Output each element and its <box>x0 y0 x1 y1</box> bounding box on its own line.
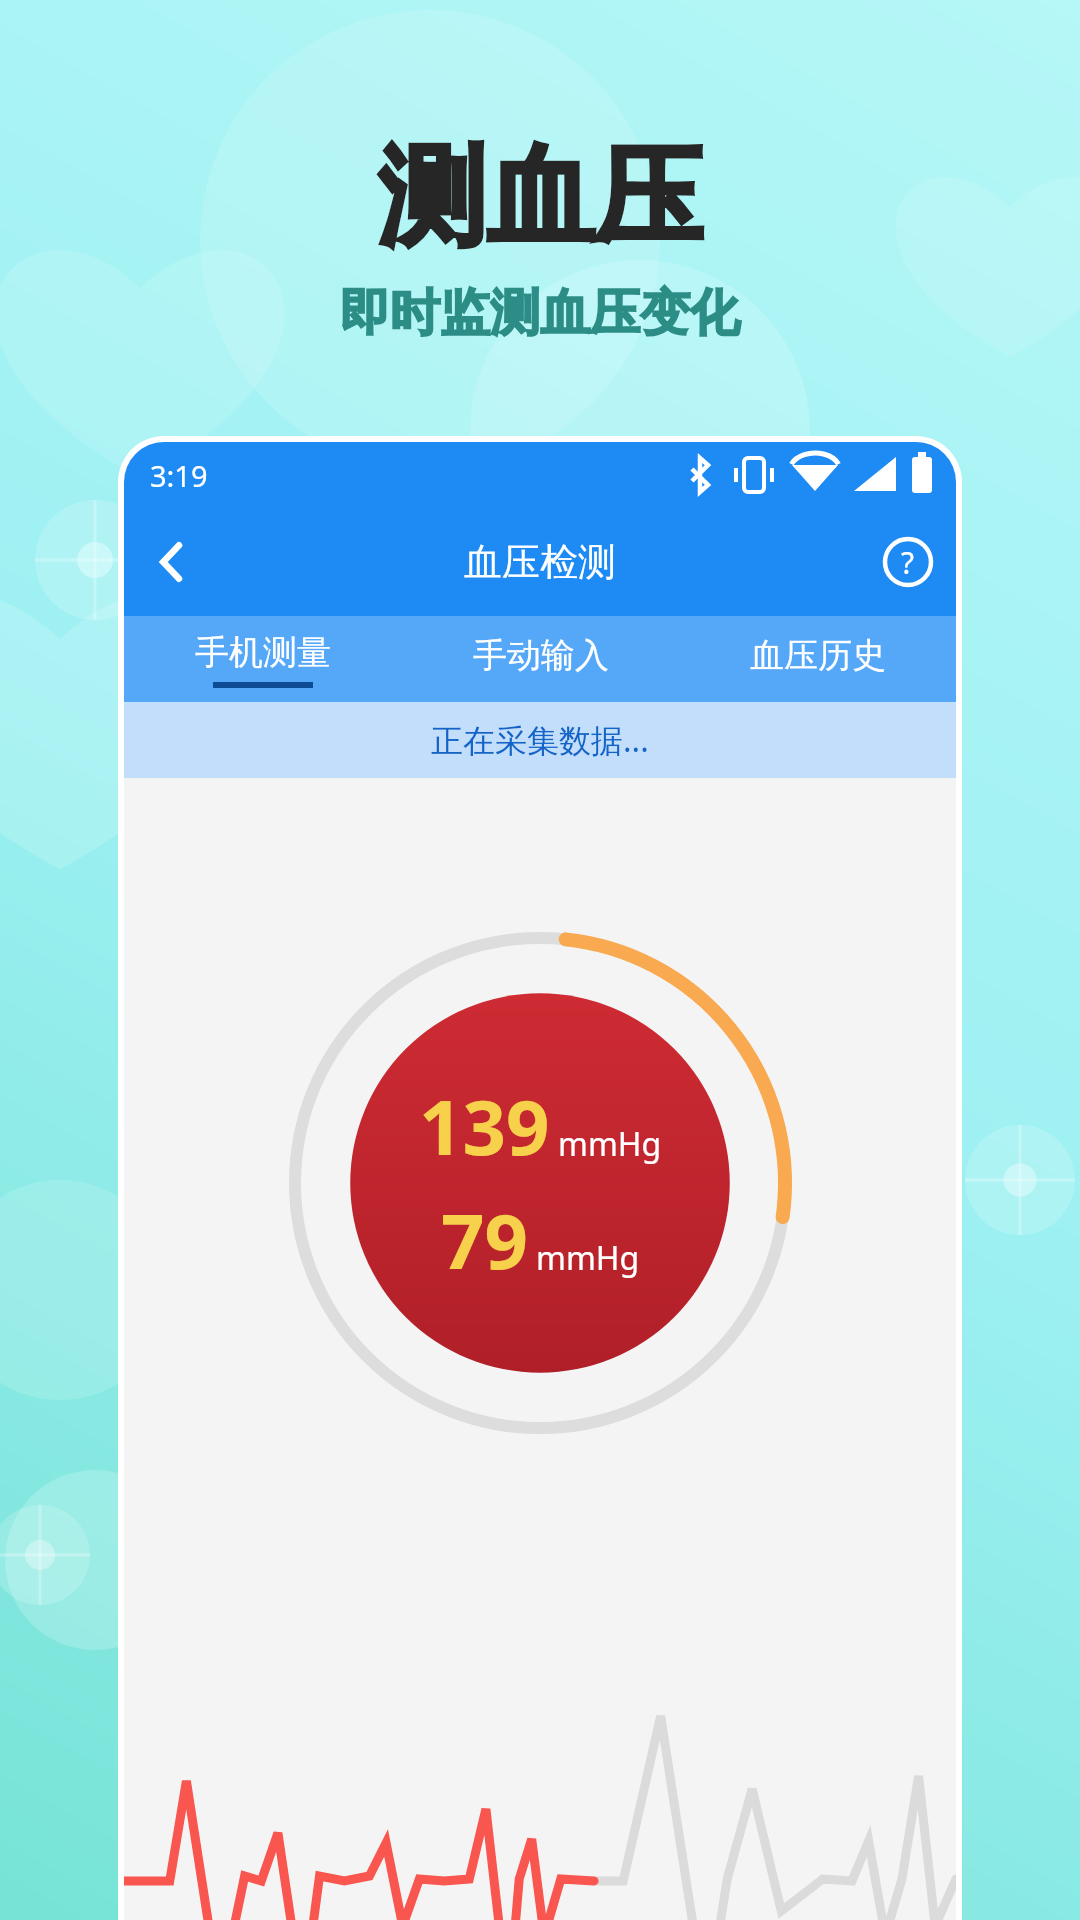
staticText: 正在采集数据... <box>431 718 649 762</box>
staticText: 79 <box>441 1188 528 1292</box>
staticText: ? <box>901 542 915 583</box>
staticText: 139 <box>419 1074 550 1178</box>
staticText: 手机测量 <box>195 631 331 674</box>
button[interactable]: Back <box>124 514 220 610</box>
button[interactable]: 手机测量 <box>124 616 402 702</box>
button[interactable]: 血压历史 <box>679 616 956 702</box>
staticText: 3:19 <box>150 456 208 495</box>
staticText: mmHg <box>536 1236 640 1280</box>
staticText: 测血压 <box>378 130 702 266</box>
button[interactable]: 手动输入 <box>402 616 679 702</box>
staticText: 手动输入 <box>473 634 609 677</box>
staticText: mmHg <box>558 1122 662 1166</box>
staticText: 血压检测 <box>464 538 616 586</box>
button[interactable]: Help <box>860 514 956 610</box>
staticText: 血压历史 <box>750 634 886 677</box>
staticText: 即时监测血压变化 <box>340 282 740 345</box>
